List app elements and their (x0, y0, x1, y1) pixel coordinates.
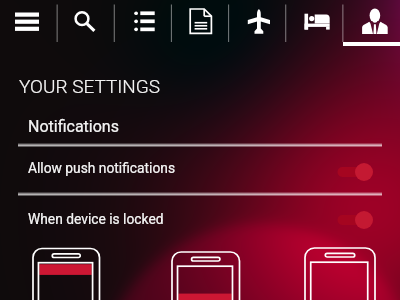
button[interactable]: List (115, 0, 172, 47)
button[interactable]: Allow push notifications (28, 160, 176, 176)
button[interactable]: Documents (172, 0, 229, 47)
button[interactable]: Hotels (286, 0, 343, 47)
button[interactable]: Profile (343, 0, 400, 47)
staticText: Notifications (28, 117, 119, 136)
button[interactable]: When device is locked (28, 211, 164, 227)
button[interactable]: Notifications (28, 117, 119, 136)
staticText: When device is locked (28, 211, 164, 227)
button[interactable]: YOUR SETTINGS (19, 75, 161, 97)
button[interactable]: Flights (229, 0, 286, 47)
button[interactable]: Toggle Allow push notifications (337, 162, 373, 182)
button[interactable]: Toggle When device is locked (337, 210, 373, 230)
staticText: YOUR SETTINGS (19, 75, 161, 97)
staticText: Allow push notifications (28, 160, 176, 176)
button[interactable]: Menu (0, 0, 58, 47)
button[interactable]: Search (58, 0, 115, 47)
